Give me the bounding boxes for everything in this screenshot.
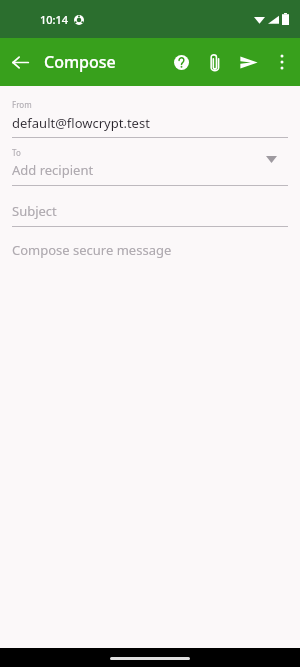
button[interactable]: Help [164, 45, 198, 79]
staticText: Compose secure message [12, 241, 172, 259]
staticText: default@flowcrypt.test [12, 114, 150, 132]
button[interactable]: Attach file [198, 45, 232, 79]
button[interactable]: Back [0, 42, 40, 82]
staticText: Compose [44, 51, 116, 73]
staticText: Add recipient [12, 161, 94, 179]
button[interactable]: Compose secure message [0, 227, 300, 648]
staticText: To [12, 147, 21, 158]
button[interactable]: Send [232, 45, 266, 79]
button[interactable]: Show recipient options [258, 146, 284, 172]
button[interactable]: From [0, 86, 300, 138]
staticText: From [12, 99, 32, 110]
button[interactable]: More options [266, 46, 298, 78]
staticText: 10:14 [40, 12, 69, 27]
staticText: Subject [12, 202, 57, 220]
button[interactable]: Subject [0, 186, 300, 227]
button[interactable]: To [0, 138, 300, 186]
